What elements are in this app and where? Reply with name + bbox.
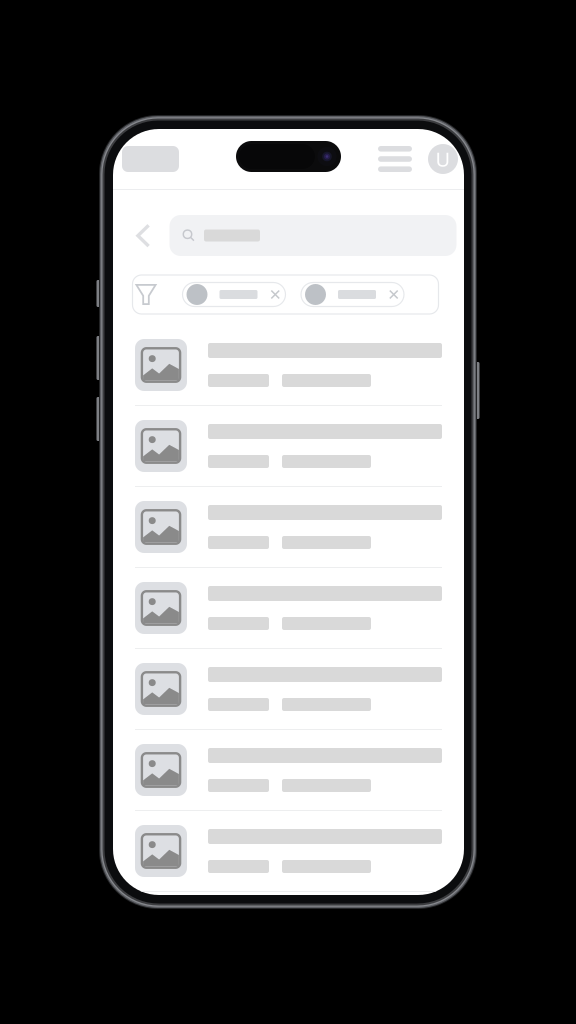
- button[interactable]: Menu: [378, 146, 412, 172]
- button[interactable]: List item: [135, 406, 442, 487]
- button[interactable]: Search: [169, 215, 456, 256]
- button[interactable]: Account: [428, 144, 458, 174]
- button[interactable]: Back: [123, 215, 162, 256]
- button[interactable]: Remove filter: [182, 282, 285, 306]
- button[interactable]: List item: [135, 487, 442, 568]
- button[interactable]: List item: [135, 325, 442, 406]
- staticText: U: [435, 146, 450, 172]
- button[interactable]: Remove filter: [301, 282, 404, 306]
- button[interactable]: List item: [135, 649, 442, 730]
- button[interactable]: List item: [135, 730, 442, 811]
- button[interactable]: List item: [135, 811, 442, 892]
- button[interactable]: Filter: [135, 284, 156, 305]
- button[interactable]: List item: [135, 568, 442, 649]
